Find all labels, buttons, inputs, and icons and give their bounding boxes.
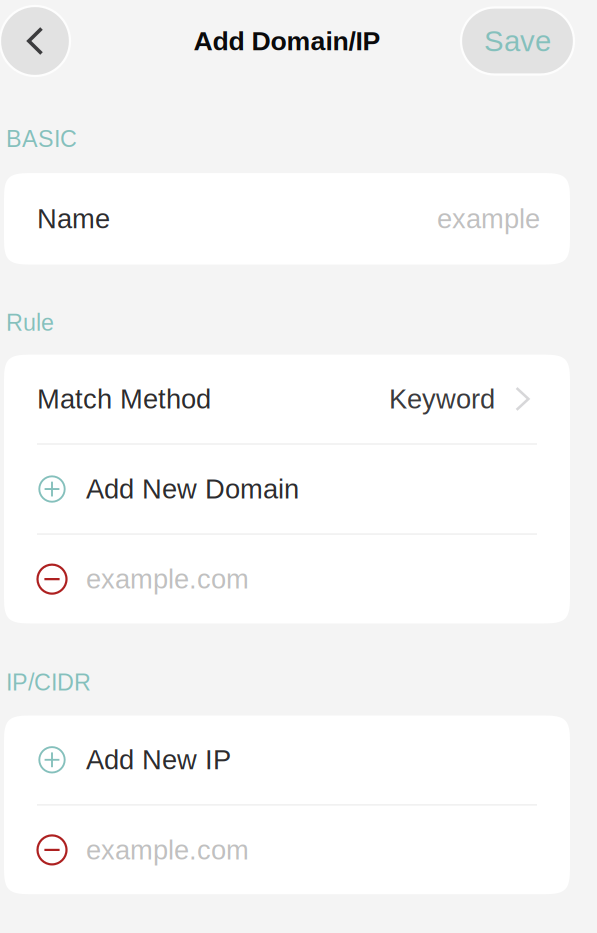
staticText: IP/CIDR — [6, 669, 91, 695]
staticText: Match Method — [37, 384, 211, 414]
staticText: Rule — [6, 310, 54, 336]
button[interactable]: Remove IP — [36, 834, 68, 866]
button[interactable]: Add New Domain — [4, 445, 570, 533]
staticText: example — [437, 203, 540, 234]
staticText: BASIC — [6, 126, 77, 152]
staticText: Name — [37, 203, 110, 234]
button[interactable]: Add New IP — [4, 715, 570, 804]
staticText: example.com — [86, 564, 249, 594]
button[interactable]: Back — [0, 6, 70, 76]
button[interactable]: Match Method — [4, 355, 570, 443]
staticText: Add New Domain — [86, 474, 299, 504]
staticText: Add Domain/IP — [193, 26, 380, 56]
button[interactable]: Save — [461, 7, 574, 74]
staticText: Keyword — [389, 384, 495, 414]
staticText: example.com — [86, 835, 249, 865]
button[interactable]: Remove domain — [36, 563, 68, 595]
staticText: Save — [484, 25, 551, 57]
staticText: Add New IP — [86, 744, 231, 775]
